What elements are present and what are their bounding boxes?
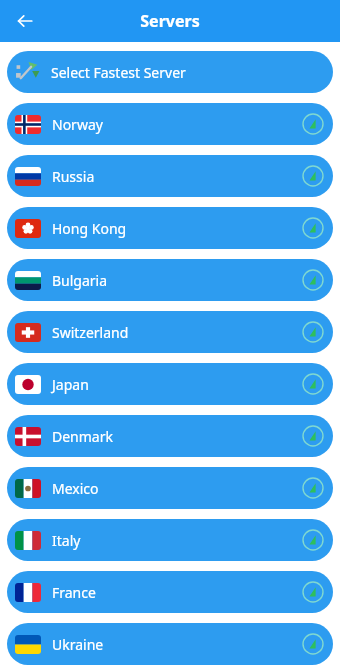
staticText: Russia [52, 167, 95, 186]
staticText: Hong Kong [52, 219, 127, 238]
button[interactable]: Back [6, 2, 44, 40]
staticText: Norway [52, 115, 103, 134]
staticText: Denmark [52, 427, 113, 446]
staticText: Bulgaria [52, 271, 108, 290]
button[interactable]: Italy [7, 519, 333, 561]
button[interactable]: Denmark [7, 415, 333, 457]
button[interactable]: Hong Kong [7, 207, 333, 249]
button[interactable]: Bulgaria [7, 259, 333, 301]
staticText: France [52, 583, 96, 602]
button[interactable]: Japan [7, 363, 333, 405]
staticText: Japan [52, 375, 89, 394]
button[interactable]: Ukraine [7, 623, 333, 665]
button[interactable]: Mexico [7, 467, 333, 509]
button[interactable]: Select Fastest Server [7, 51, 333, 93]
staticText: Servers [140, 10, 200, 32]
button[interactable]: Switzerland [7, 311, 333, 353]
staticText: Italy [52, 531, 81, 550]
staticText: Switzerland [52, 323, 129, 342]
button[interactable]: Norway [7, 103, 333, 145]
staticText: Mexico [52, 479, 99, 498]
staticText: Select Fastest Server [51, 63, 186, 82]
button[interactable]: France [7, 571, 333, 613]
staticText: Ukraine [52, 635, 104, 654]
button[interactable]: Russia [7, 155, 333, 197]
